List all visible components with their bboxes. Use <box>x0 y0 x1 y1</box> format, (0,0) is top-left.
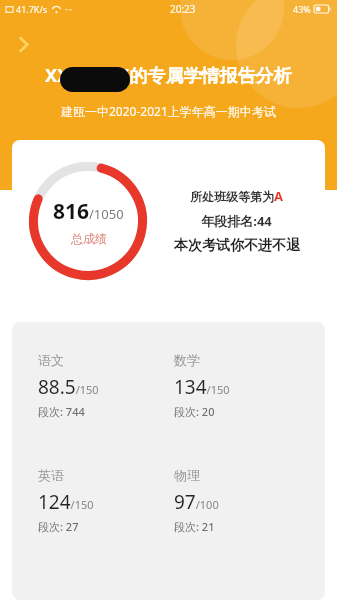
staticText: 134/150 <box>174 374 230 400</box>
staticText: 20:23 <box>170 2 196 16</box>
staticText: 816/1050 <box>53 197 124 226</box>
staticText: 124/150 <box>38 489 94 515</box>
staticText: 建瓯一中2020-2021上学年高一期中考试 <box>61 103 276 119</box>
button[interactable]: Back <box>6 27 40 61</box>
button[interactable]: 816/1050 <box>12 140 325 302</box>
staticText: 英语 <box>38 467 64 483</box>
button[interactable]: 语文 <box>38 352 174 419</box>
staticText: 年段排名:44 <box>201 212 272 230</box>
staticText: 97/100 <box>174 489 219 515</box>
staticText: 本次考试你不进不退 <box>174 237 300 255</box>
staticText: 段次: 744 <box>38 404 85 419</box>
staticText: 41.7K/s <box>16 3 48 15</box>
staticText: 43% <box>293 3 311 15</box>
button[interactable]: 物理 <box>174 467 311 534</box>
button[interactable]: 英语 <box>38 467 174 534</box>
staticText: 数学 <box>174 352 200 368</box>
staticText: 所处班级等第为A <box>190 187 283 205</box>
button[interactable]: 数学 <box>174 352 311 419</box>
staticText: 总成绩 <box>71 231 107 246</box>
staticText: 段次: 21 <box>174 519 215 534</box>
staticText: 段次: 27 <box>38 519 79 534</box>
staticText: 88.5/150 <box>38 374 99 400</box>
staticText: 物理 <box>174 467 200 483</box>
staticText: XXXXXXX的专属学情报告分析 <box>45 63 292 88</box>
staticText: 语文 <box>38 352 64 368</box>
staticText: 段次: 20 <box>174 404 215 419</box>
staticText: ··· <box>65 3 73 15</box>
